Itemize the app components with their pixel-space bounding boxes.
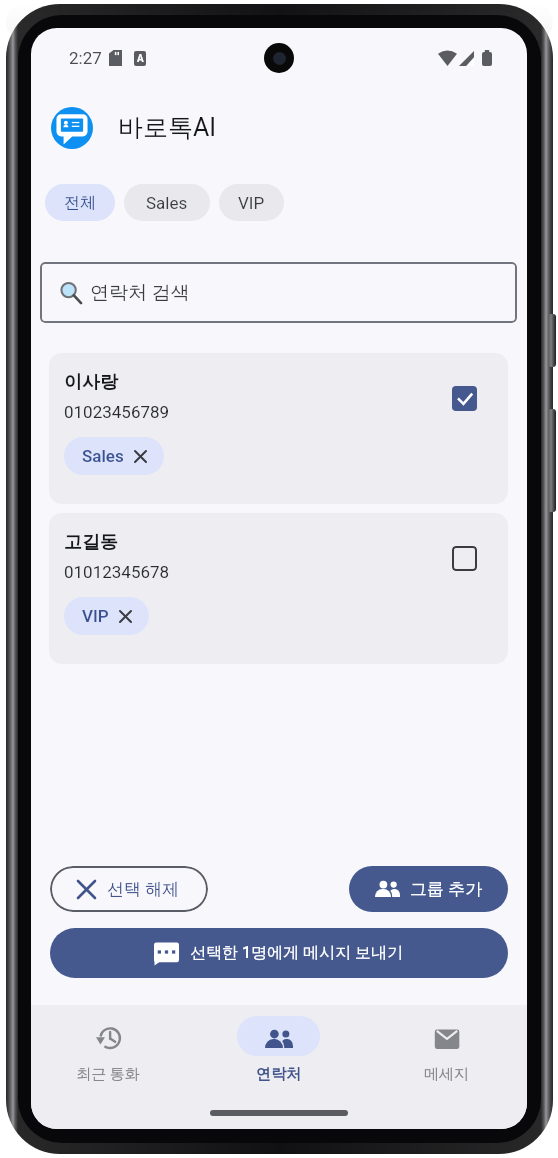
staticText: 이사랑: [64, 371, 118, 394]
staticText: 고길동: [64, 531, 118, 554]
staticText: VIP: [238, 193, 265, 213]
staticText: 연락처: [256, 1065, 301, 1084]
button[interactable]: Sales: [64, 437, 164, 475]
staticText: 연락처 검색: [90, 281, 190, 305]
staticText: 바로톡AI: [118, 112, 217, 143]
staticText: 01012345678: [64, 562, 170, 582]
button[interactable]: 이사랑: [49, 353, 508, 504]
button[interactable]: 선택 해제: [50, 866, 208, 912]
button[interactable]: Not selected: [450, 544, 478, 572]
staticText: 2:27: [69, 48, 102, 68]
button[interactable]: 고길동: [49, 513, 508, 664]
staticText: 그룹 추가: [410, 879, 483, 900]
staticText: VIP: [82, 606, 109, 626]
staticText: 최근 통화: [76, 1065, 140, 1084]
staticText: 선택한 1명에게 메시지 보내기: [190, 943, 404, 963]
button[interactable]: Sales: [124, 184, 210, 221]
staticText: 선택 해제: [107, 879, 180, 900]
button[interactable]: 전체: [45, 184, 115, 221]
button[interactable]: 연락처: [218, 1016, 338, 1084]
button[interactable]: 메세지: [386, 1016, 506, 1084]
staticText: Sales: [146, 193, 188, 213]
staticText: 01023456789: [64, 402, 170, 422]
button[interactable]: VIP: [64, 597, 149, 635]
staticText: Sales: [82, 446, 124, 466]
button[interactable]: 그룹 추가: [349, 866, 508, 912]
staticText: A: [137, 53, 144, 65]
button[interactable]: 연락처 검색: [40, 262, 517, 323]
staticText: 전체: [64, 193, 96, 213]
staticText: 메세지: [424, 1065, 469, 1084]
button[interactable]: 최근 통화: [48, 1016, 168, 1084]
button[interactable]: Selected: [450, 384, 478, 412]
button[interactable]: 선택한 1명에게 메시지 보내기: [50, 928, 508, 978]
button[interactable]: VIP: [219, 184, 284, 221]
